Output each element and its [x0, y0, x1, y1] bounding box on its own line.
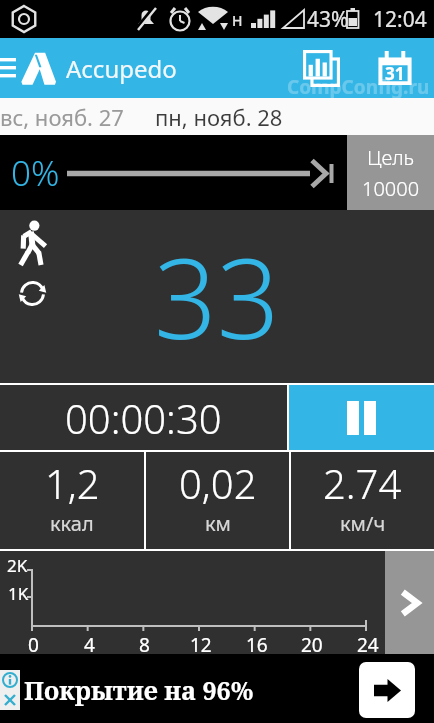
staticText: 33 — [154, 221, 280, 371]
button[interactable]: Walking mode — [17, 221, 48, 267]
staticText: 00:00:30 — [65, 391, 222, 445]
staticText: км/ч — [340, 510, 386, 537]
staticText: ккал — [50, 510, 94, 537]
staticText: 4 — [84, 632, 95, 658]
button[interactable]: Statistics — [283, 38, 359, 98]
staticText: 12:04 — [373, 5, 427, 34]
button[interactable]: Close ad — [0, 690, 20, 710]
staticText: Покрытие на 96% — [24, 673, 254, 707]
staticText: 2K — [7, 554, 28, 577]
staticText: CompConfig.ru — [287, 74, 430, 100]
staticText: 10000 — [362, 175, 420, 202]
staticText: 1,2 — [45, 456, 100, 510]
staticText: 0% — [11, 149, 60, 197]
button[interactable]: вс, нояб. 27 — [0, 102, 124, 132]
staticText: км — [205, 510, 231, 537]
button[interactable]: Switch activity mode — [17, 278, 48, 309]
staticText: 8 — [139, 632, 150, 658]
button[interactable]: 00:00:30 — [0, 385, 287, 450]
button[interactable]: Next day — [385, 551, 434, 654]
staticText: Цель — [367, 144, 415, 171]
button[interactable]: пн, нояб. 28 — [155, 102, 283, 132]
button[interactable]: 2.74 — [291, 452, 434, 549]
button[interactable]: Open advertisement — [359, 662, 415, 718]
button[interactable]: 1,2 — [0, 452, 144, 549]
button[interactable]: Ad information — [0, 670, 20, 690]
staticText: 20 — [301, 632, 323, 658]
button[interactable]: Pause — [289, 385, 434, 450]
staticText: 31 — [385, 62, 405, 85]
button[interactable]: Цель — [347, 135, 434, 210]
staticText: 0,02 — [179, 456, 257, 510]
staticText: 0 — [28, 632, 39, 658]
button[interactable]: Calendar — [364, 38, 426, 98]
staticText: 2.74 — [323, 456, 402, 510]
staticText: 1K — [8, 582, 29, 605]
button[interactable]: 0,02 — [146, 452, 289, 549]
button[interactable]: Menu — [0, 38, 16, 98]
staticText: 43% — [307, 5, 349, 34]
staticText: 16 — [246, 632, 268, 658]
staticText: 12 — [190, 632, 212, 658]
staticText: H — [232, 11, 243, 30]
staticText: 24 — [357, 632, 379, 658]
staticText: Accupedo — [66, 52, 177, 85]
